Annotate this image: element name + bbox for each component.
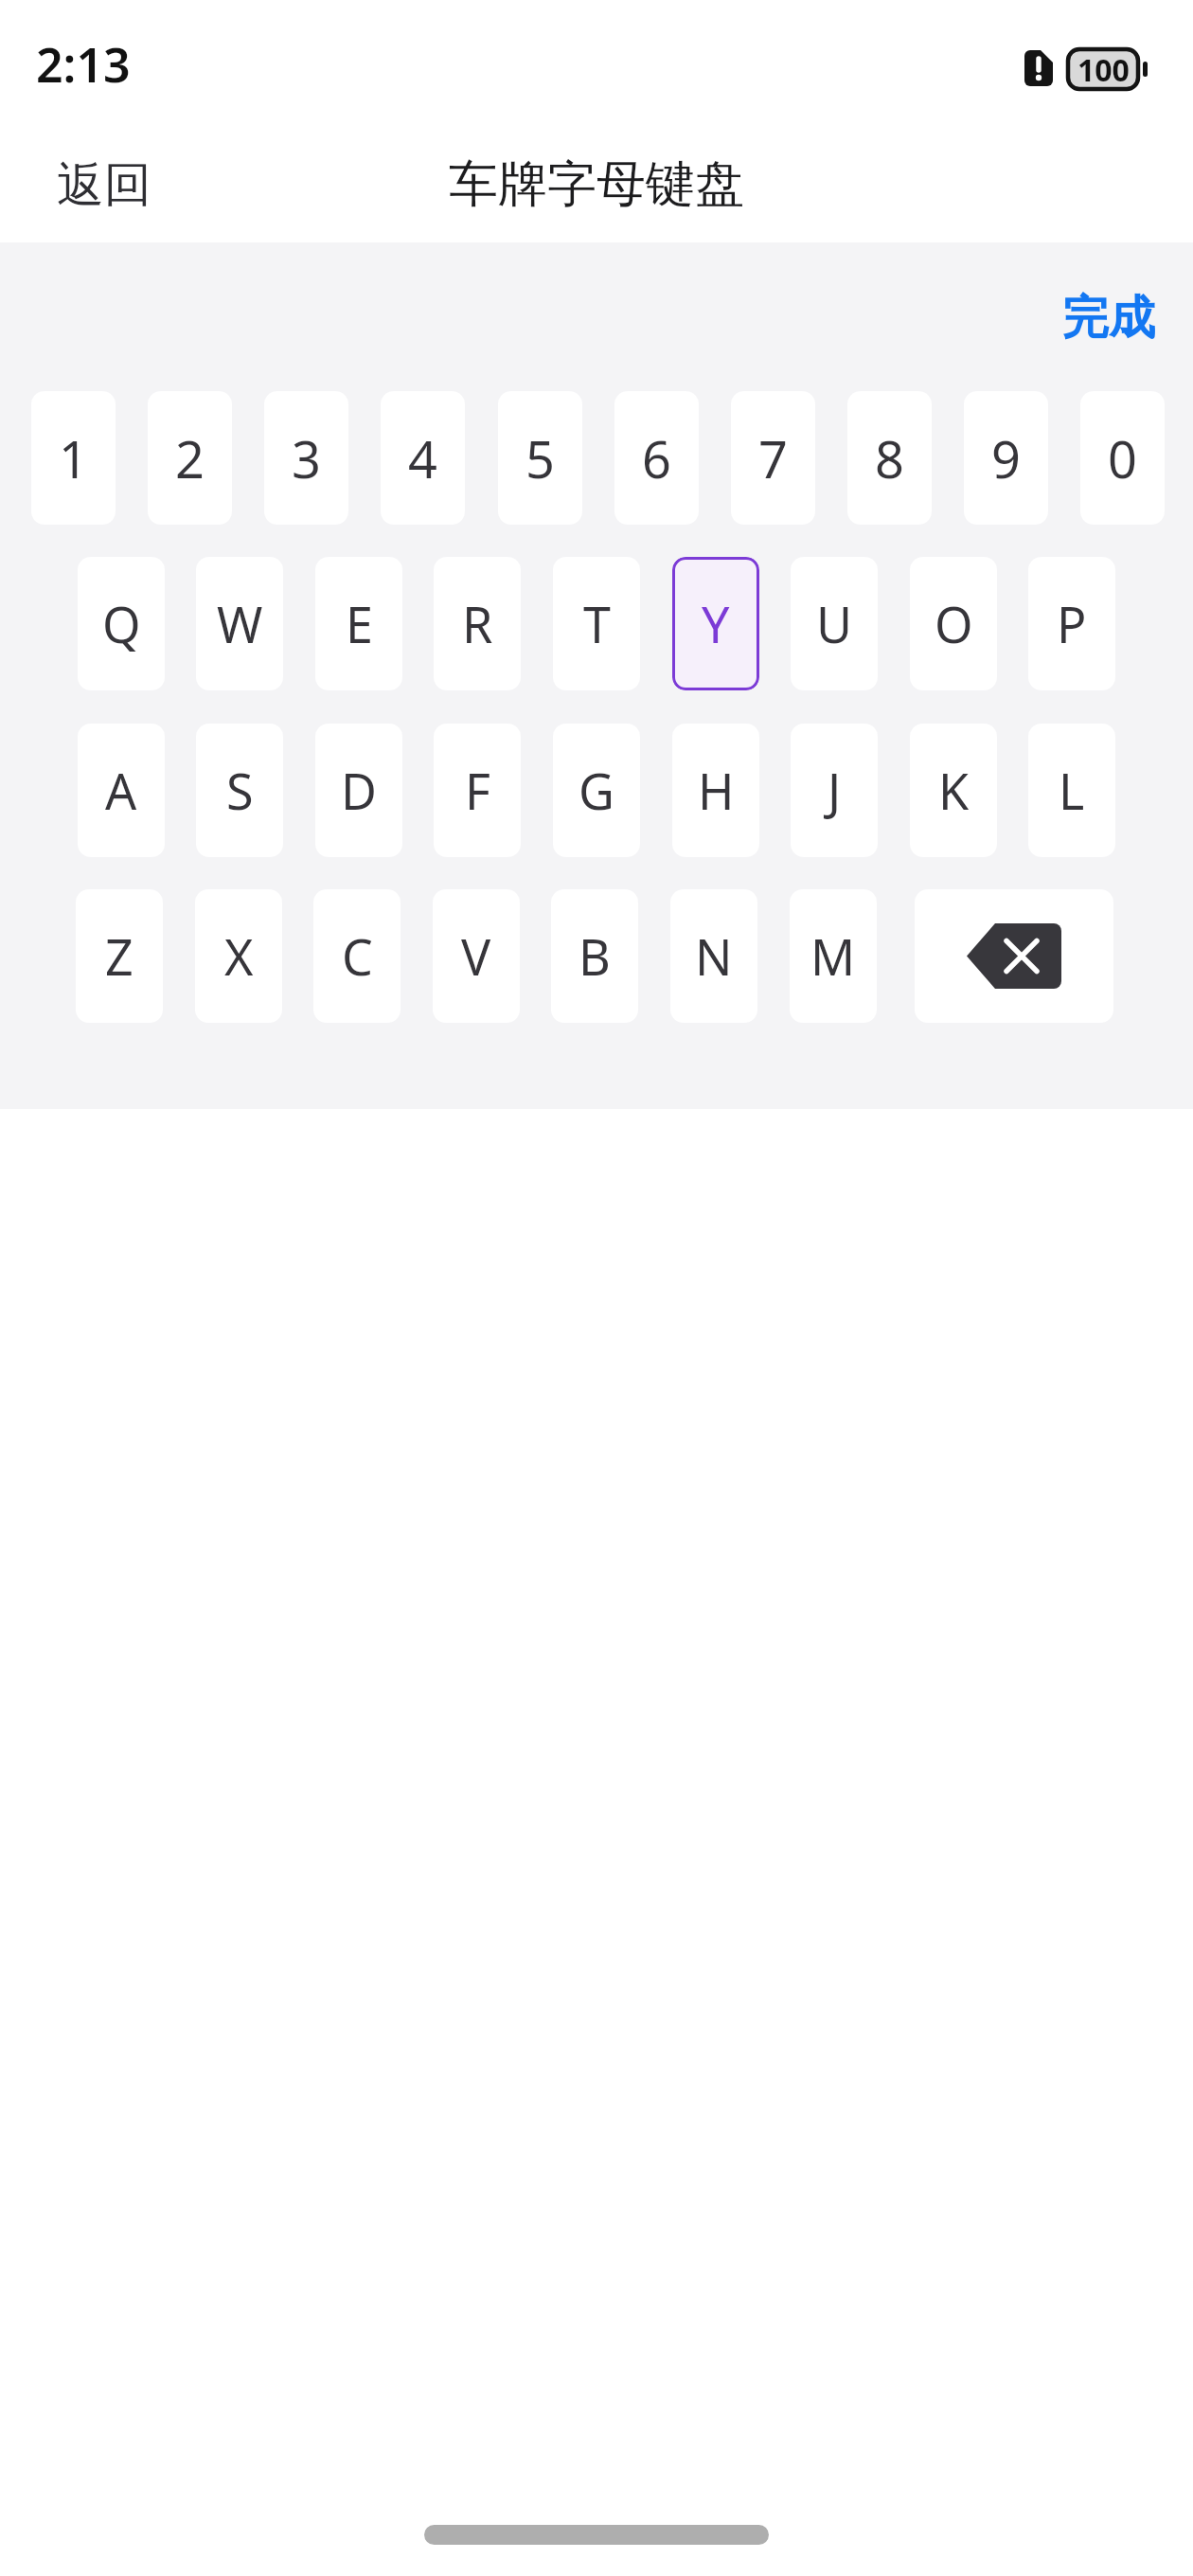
button[interactable]: 2: [148, 391, 232, 525]
staticText: C: [342, 922, 373, 990]
button[interactable]: E: [315, 557, 402, 690]
button[interactable]: G: [553, 724, 640, 857]
staticText: 5: [525, 423, 555, 493]
button[interactable]: D: [315, 724, 402, 857]
button[interactable]: X: [195, 889, 282, 1023]
button[interactable]: L: [1028, 724, 1115, 857]
button[interactable]: K: [910, 724, 997, 857]
button[interactable]: 8: [847, 391, 932, 525]
staticText: L: [1059, 757, 1085, 824]
staticText: G: [579, 757, 614, 824]
staticText: M: [810, 922, 856, 990]
staticText: Z: [105, 922, 134, 990]
staticText: N: [695, 922, 733, 990]
staticText: K: [938, 757, 970, 824]
staticText: 1: [59, 423, 88, 493]
staticText: 返回: [57, 155, 151, 215]
staticText: 3: [292, 423, 321, 493]
staticText: W: [217, 590, 263, 657]
staticText: F: [465, 757, 490, 824]
button[interactable]: 6: [614, 391, 699, 525]
staticText: 6: [642, 423, 671, 493]
button[interactable]: J: [791, 724, 878, 857]
button[interactable]: C: [313, 889, 401, 1023]
staticText: T: [583, 590, 611, 657]
staticText: 2: [175, 423, 205, 493]
button[interactable]: S: [196, 724, 283, 857]
staticText: 4: [408, 423, 437, 493]
button[interactable]: Z: [76, 889, 163, 1023]
button[interactable]: 完成: [1047, 280, 1170, 356]
staticText: X: [224, 922, 254, 990]
button[interactable]: A: [78, 724, 165, 857]
button[interactable]: 7: [731, 391, 815, 525]
staticText: 9: [991, 423, 1021, 493]
staticText: A: [105, 757, 137, 824]
button[interactable]: H: [672, 724, 759, 857]
staticText: D: [341, 757, 377, 824]
button[interactable]: N: [670, 889, 757, 1023]
staticText: P: [1057, 590, 1087, 657]
button[interactable]: F: [434, 724, 521, 857]
button[interactable]: 3: [264, 391, 348, 525]
button[interactable]: 0: [1080, 391, 1165, 525]
button[interactable]: M: [790, 889, 877, 1023]
staticText: 8: [875, 423, 904, 493]
button[interactable]: Y: [672, 557, 759, 690]
staticText: E: [346, 590, 373, 657]
button[interactable]: [915, 889, 1113, 1023]
button[interactable]: W: [196, 557, 283, 690]
staticText: 0: [1108, 423, 1137, 493]
staticText: H: [698, 757, 735, 824]
button[interactable]: U: [791, 557, 878, 690]
staticText: V: [461, 922, 491, 990]
button[interactable]: 4: [381, 391, 465, 525]
staticText: 2:13: [36, 32, 131, 97]
button[interactable]: B: [551, 889, 638, 1023]
button[interactable]: 9: [964, 391, 1048, 525]
staticText: 车牌字母键盘: [449, 153, 744, 216]
staticText: B: [579, 922, 611, 990]
button[interactable]: 返回: [57, 147, 151, 223]
staticText: 7: [758, 423, 788, 493]
button[interactable]: V: [433, 889, 520, 1023]
staticText: R: [462, 590, 493, 657]
staticText: U: [816, 590, 853, 657]
staticText: 100: [1077, 49, 1130, 89]
button[interactable]: O: [910, 557, 997, 690]
staticText: O: [935, 590, 973, 657]
button[interactable]: P: [1028, 557, 1115, 690]
staticText: J: [828, 757, 842, 824]
button[interactable]: 5: [498, 391, 582, 525]
button[interactable]: 1: [31, 391, 116, 525]
button[interactable]: T: [553, 557, 640, 690]
button[interactable]: Q: [78, 557, 165, 690]
staticText: 完成: [1062, 289, 1155, 348]
staticText: Y: [702, 590, 730, 657]
button[interactable]: R: [434, 557, 521, 690]
staticText: S: [226, 757, 254, 824]
staticText: Q: [102, 590, 141, 657]
